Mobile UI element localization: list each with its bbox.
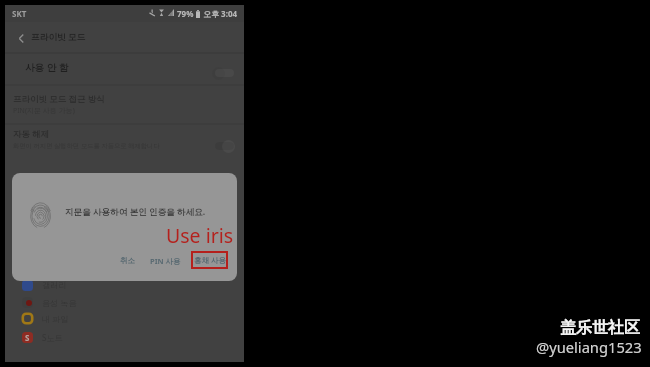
staticText: 프라이빗 모드	[31, 31, 86, 43]
staticText: PIN 사용	[150, 256, 181, 266]
button[interactable]: 음성 녹음	[5, 293, 244, 311]
button[interactable]: 내 파일	[5, 309, 244, 327]
button[interactable]: Switch off	[212, 66, 234, 80]
staticText: 프라이빗 모드 접근 방식	[13, 93, 105, 105]
staticText: 홍채 사용	[194, 255, 226, 265]
staticText: 지문을 사용하여 본인 인증을 하세요.	[65, 206, 206, 218]
button[interactable]: S	[5, 328, 244, 346]
button[interactable]: 갤러리	[5, 276, 244, 294]
staticText: SKT	[12, 8, 27, 19]
button[interactable]: 홍채 사용	[191, 251, 228, 269]
staticText: 79%	[177, 8, 194, 19]
staticText: 갤러리	[42, 280, 67, 290]
button[interactable]: Back	[11, 28, 31, 48]
staticText: 취소	[120, 256, 135, 265]
button[interactable]: 취소	[114, 251, 141, 270]
staticText: S	[25, 332, 30, 343]
button[interactable]: Switch on	[212, 139, 234, 153]
button[interactable]: PIN 사용	[144, 251, 187, 271]
staticText: 盖乐世社区	[560, 318, 640, 338]
button[interactable]: 사용 안 함	[5, 52, 244, 83]
staticText: 자동 해제	[13, 128, 50, 140]
staticText: 오후 3:04	[203, 8, 238, 19]
staticText: @yueliang1523	[536, 337, 642, 357]
staticText: 사용 안 함	[25, 61, 69, 74]
staticText: Use iris	[166, 222, 234, 249]
